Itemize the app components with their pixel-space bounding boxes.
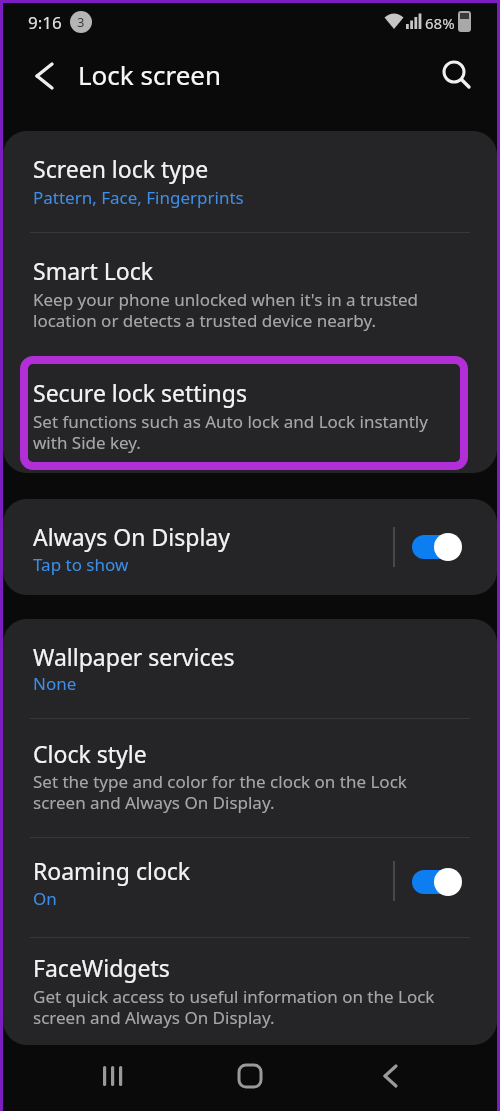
staticText: FaceWidgets xyxy=(33,952,170,983)
button[interactable] xyxy=(3,719,497,837)
button[interactable] xyxy=(225,1052,275,1100)
staticText: None xyxy=(33,672,77,695)
button[interactable] xyxy=(412,868,462,896)
staticText: 3 xyxy=(77,13,85,31)
button[interactable] xyxy=(432,50,480,98)
button[interactable] xyxy=(3,233,497,355)
button[interactable] xyxy=(365,1052,415,1100)
button[interactable] xyxy=(3,355,497,473)
staticText: 9:16 xyxy=(28,11,62,34)
staticText: Clock style xyxy=(33,738,147,769)
staticText: On xyxy=(33,887,57,910)
button[interactable] xyxy=(3,131,497,233)
button[interactable] xyxy=(3,619,497,718)
staticText: Get quick access to useful information o… xyxy=(33,985,435,1029)
button[interactable] xyxy=(88,1052,138,1100)
button[interactable] xyxy=(3,938,497,1045)
staticText: Set the type and color for the clock on … xyxy=(33,770,407,814)
staticText: Smart Lock xyxy=(33,255,154,286)
staticText: Roaming clock xyxy=(33,855,191,886)
staticText: Lock screen xyxy=(78,57,222,92)
staticText: Secure lock settings xyxy=(33,377,247,408)
button[interactable] xyxy=(412,533,462,561)
staticText: Keep your phone unlocked when it's in a … xyxy=(33,288,418,332)
staticText: 68% xyxy=(425,13,455,33)
staticText: Pattern, Face, Fingerprints xyxy=(33,186,244,209)
staticText: Wallpaper services xyxy=(33,641,235,672)
button[interactable] xyxy=(3,838,497,937)
staticText: Always On Display xyxy=(33,521,230,552)
button[interactable] xyxy=(16,52,64,100)
staticText: Set functions such as Auto lock and Lock… xyxy=(33,410,428,454)
staticText: Tap to show xyxy=(33,553,129,576)
staticText: Screen lock type xyxy=(33,153,209,184)
button[interactable] xyxy=(3,499,497,595)
